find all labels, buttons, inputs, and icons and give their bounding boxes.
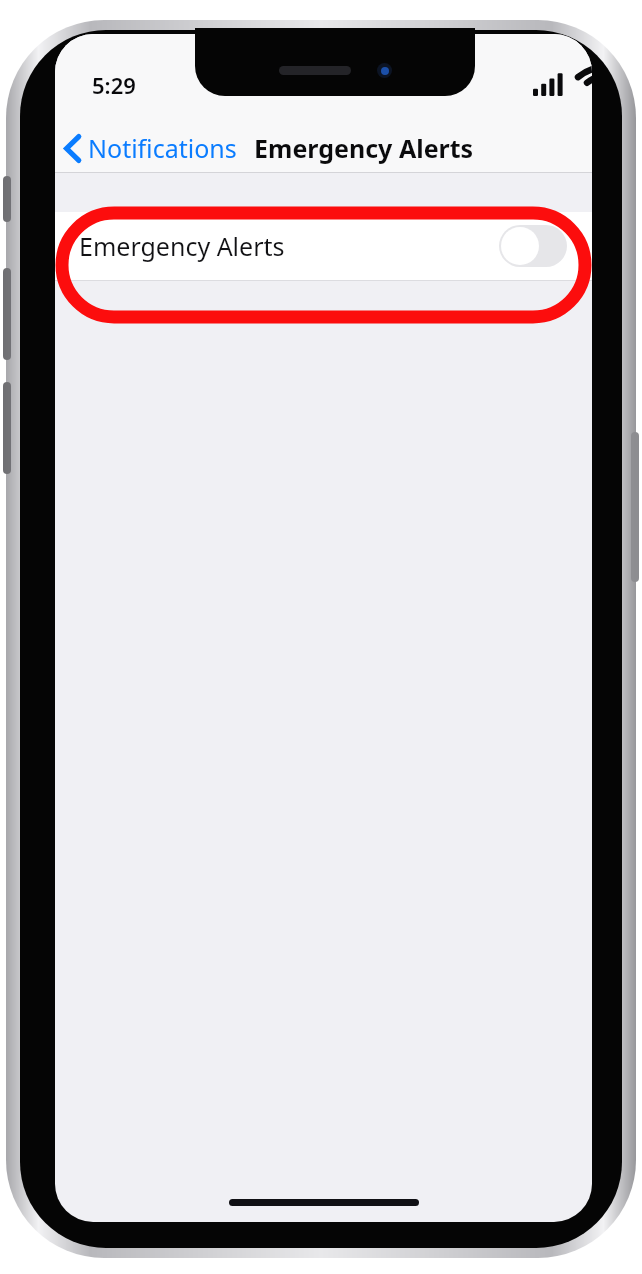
staticText: Emergency Alerts: [254, 131, 474, 165]
staticText: Emergency Alerts: [79, 229, 285, 263]
button[interactable]: Emergency Alerts toggle, off: [499, 225, 567, 267]
button[interactable]: Emergency Alerts: [55, 212, 592, 280]
staticText: 5:29: [92, 70, 136, 100]
staticText: Notifications: [88, 131, 237, 165]
button[interactable]: Notifications: [55, 124, 243, 172]
